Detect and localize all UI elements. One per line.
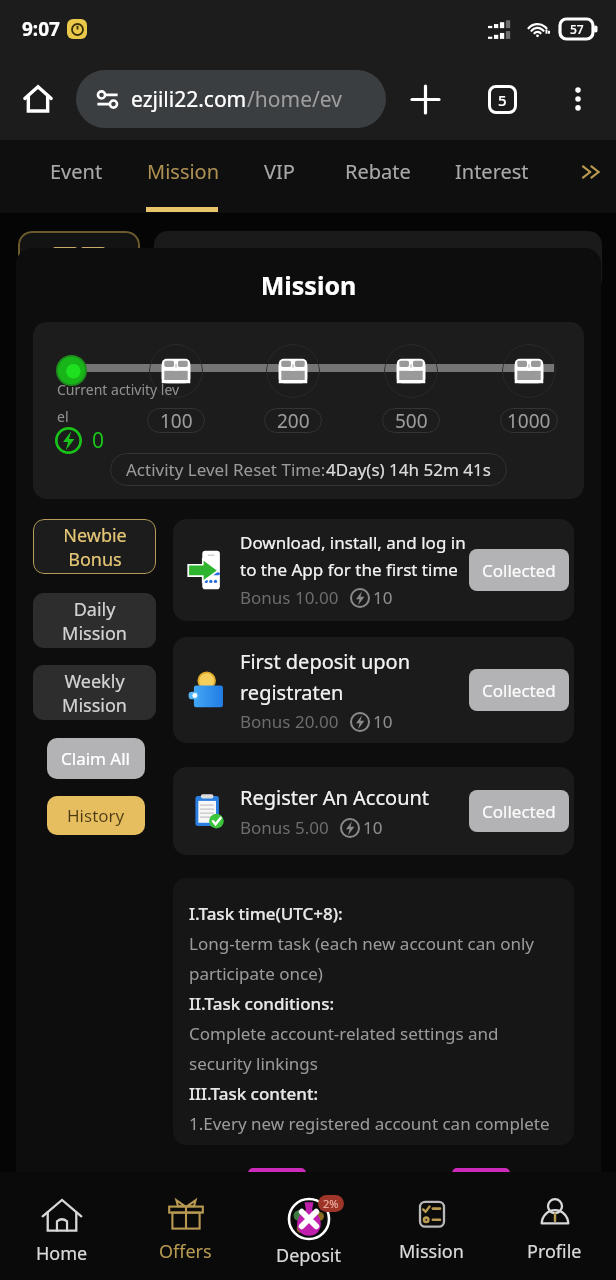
staticText: Newbie Bonus [63, 523, 127, 571]
button[interactable]: Collected [469, 669, 569, 711]
staticText: 200 [277, 408, 310, 433]
staticText: Profile [527, 1239, 582, 1264]
staticText: First deposit upon registraten [240, 648, 411, 705]
staticText: History [67, 804, 125, 827]
staticText: Complete account-related settings and [189, 1022, 499, 1045]
staticText: 10 [373, 710, 393, 733]
staticText: 9:07 [22, 16, 60, 42]
button[interactable]: More options [554, 75, 602, 123]
staticText: Register An Account [240, 784, 430, 811]
staticText: Collected [482, 679, 556, 702]
staticText: II.Task conditions: [189, 992, 335, 1015]
staticText: 100 [160, 408, 193, 433]
staticText: 1.Every new registered account can compl… [189, 1112, 550, 1135]
staticText: /home/ev [247, 85, 342, 114]
staticText: Mission [16, 268, 601, 302]
button[interactable]: History [47, 796, 145, 835]
button[interactable]: More tabs [571, 152, 611, 192]
staticText: 1000 [507, 408, 551, 433]
staticText: el [57, 407, 69, 426]
staticText: Weekly Mission [62, 669, 127, 717]
button[interactable]: Home [0, 1172, 124, 1280]
staticText: 5 [498, 90, 507, 110]
staticText: 0 [92, 426, 105, 455]
staticText: Download, install, and log in to the App… [240, 531, 465, 581]
button[interactable]: Event [36, 140, 117, 213]
staticText: Offers [159, 1239, 212, 1264]
button[interactable]: Weekly Mission [33, 665, 156, 720]
staticText: Mission [399, 1239, 464, 1264]
staticText: 10 [373, 586, 393, 609]
staticText: Collected [482, 559, 556, 582]
button[interactable]: ezjili22.com [76, 70, 386, 128]
button[interactable]: New tab [401, 75, 449, 123]
button[interactable]: Interest [441, 140, 543, 213]
staticText: 4Day(s) 14h 52m 41s [326, 458, 491, 481]
button[interactable]: Rebate [331, 140, 425, 213]
staticText: Activity Level Reset Time: [126, 458, 326, 481]
staticText: 57 [570, 21, 584, 37]
button[interactable]: Offers [124, 1172, 247, 1280]
staticText: Current activity lev [57, 380, 180, 399]
staticText: Bonus 5.00 [240, 816, 329, 839]
button[interactable]: Collected [469, 790, 569, 832]
staticText: Mission [147, 158, 220, 185]
staticText: 2% [323, 1196, 339, 1211]
button[interactable]: Profile [493, 1172, 616, 1280]
staticText: Collected [482, 800, 556, 823]
button[interactable]: Home [14, 75, 62, 123]
button[interactable]: Daily Mission [33, 593, 156, 648]
staticText: Home [36, 1241, 88, 1266]
staticText: Daily Mission [62, 597, 127, 645]
staticText: Bonus 20.00 [240, 710, 339, 733]
staticText: VIP [264, 158, 295, 185]
button[interactable]: 2% [247, 1172, 370, 1280]
staticText: security linkings [189, 1052, 318, 1075]
staticText: 500 [395, 408, 428, 433]
button[interactable]: Mission [370, 1172, 493, 1280]
button[interactable]: Register An Account [173, 767, 574, 855]
button[interactable]: Claim All [47, 738, 145, 779]
staticText: Interest [455, 158, 529, 185]
staticText: Event [50, 158, 103, 185]
staticText: Long-term task (each new account can onl… [189, 932, 535, 955]
staticText: 10 [363, 816, 383, 839]
button[interactable]: Download, install, and log in to the App… [173, 519, 574, 621]
button[interactable]: Tabs [478, 75, 526, 123]
button[interactable]: Collected [469, 549, 569, 591]
staticText: participate once) [189, 962, 323, 985]
staticText: Deposit [276, 1243, 342, 1268]
staticText: ezjili22.com [131, 85, 247, 114]
button[interactable]: Newbie Bonus [33, 519, 156, 574]
staticText: Rebate [345, 158, 411, 185]
staticText: I.Task time(UTC+8): [189, 902, 343, 925]
staticText: Bonus 10.00 [240, 586, 339, 609]
staticText: III.Task content: [189, 1082, 319, 1105]
button[interactable]: First deposit upon registraten [173, 637, 574, 743]
button[interactable]: VIP [250, 140, 309, 213]
staticText: Claim All [61, 747, 131, 770]
button[interactable]: Mission [133, 140, 234, 213]
